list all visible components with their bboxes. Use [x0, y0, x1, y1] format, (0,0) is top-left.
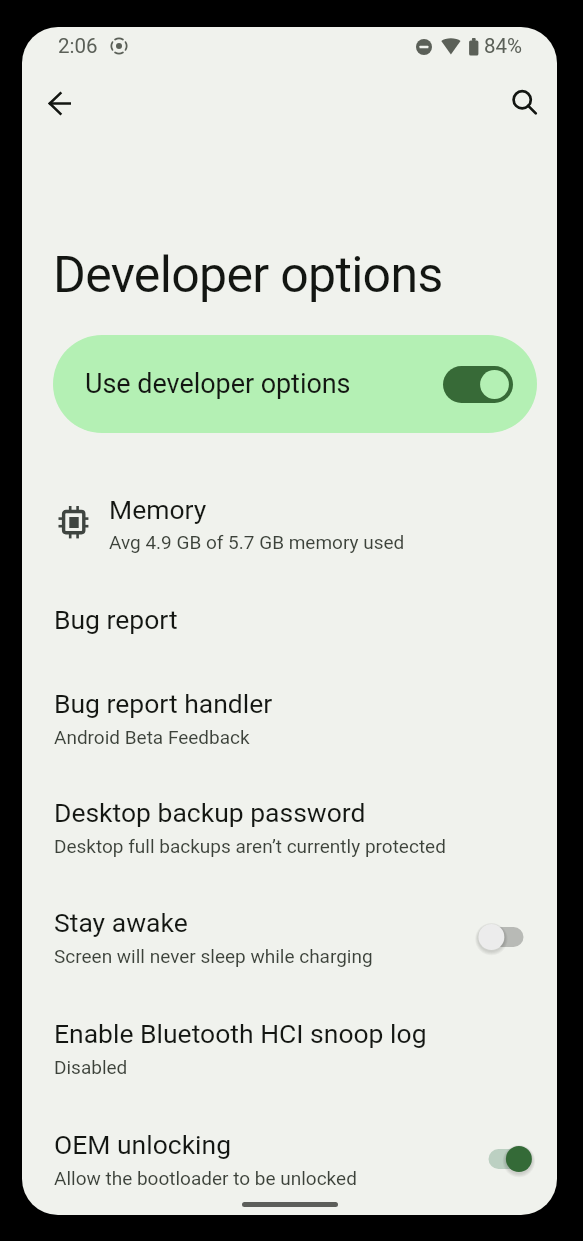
staticText: Bug report: [54, 604, 178, 635]
staticText: Memory: [109, 494, 207, 525]
button[interactable]: Bug report: [22, 581, 557, 649]
staticText: OEM unlocking: [54, 1129, 232, 1160]
staticText: Enable Bluetooth HCI snoop log: [54, 1018, 427, 1049]
button[interactable]: Enable Bluetooth HCI snoop log: [22, 995, 557, 1099]
button[interactable]: OEM unlocking: [22, 1106, 557, 1210]
staticText: Developer options: [53, 246, 443, 305]
staticText: Screen will never sleep while charging: [54, 945, 373, 967]
staticText: Avg 4.9 GB of 5.7 GB memory used: [109, 531, 405, 553]
button[interactable]: Back: [36, 79, 84, 127]
staticText: Use developer options: [85, 368, 351, 400]
staticText: Desktop full backups aren’t currently pr…: [54, 835, 446, 857]
staticText: Desktop backup password: [54, 797, 366, 828]
staticText: Stay awake: [54, 907, 188, 938]
staticText: Android Beta Feedback: [54, 726, 250, 748]
button[interactable]: Toggle off: [480, 921, 532, 953]
button[interactable]: Memory: [22, 484, 557, 572]
button[interactable]: Search: [501, 79, 549, 127]
button[interactable]: Bug report handler: [22, 665, 557, 769]
staticText: 84%: [484, 34, 523, 58]
button[interactable]: Stay awake: [22, 884, 557, 988]
staticText: Bug report handler: [54, 688, 273, 719]
button[interactable]: Use developer options: [53, 335, 537, 433]
button[interactable]: Desktop backup password: [22, 774, 557, 878]
staticText: Disabled: [54, 1056, 128, 1078]
staticText: Allow the bootloader to be unlocked: [54, 1167, 357, 1189]
button[interactable]: Toggle on: [480, 1143, 532, 1175]
staticText: 2:06: [58, 34, 98, 58]
